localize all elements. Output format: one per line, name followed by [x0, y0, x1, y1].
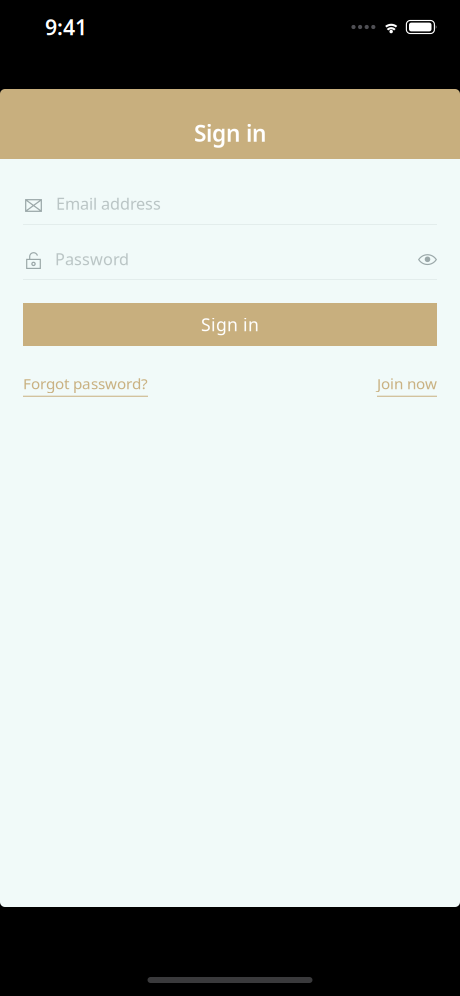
- button[interactable]: Sign in: [23, 303, 437, 346]
- staticText: Forgot password?: [23, 373, 148, 394]
- button[interactable]: Email address: [23, 190, 437, 214]
- staticText: Password: [55, 248, 129, 270]
- staticText: Sign in: [201, 312, 259, 336]
- staticText: Email address: [56, 192, 161, 215]
- button[interactable]: Join now: [377, 373, 437, 397]
- button[interactable]: Password: [23, 245, 418, 270]
- staticText: Sign in: [194, 118, 266, 148]
- button[interactable]: Show password: [418, 250, 437, 265]
- staticText: 9:41: [45, 13, 87, 41]
- staticText: Join now: [377, 373, 437, 394]
- button[interactable]: Forgot password?: [23, 373, 148, 397]
